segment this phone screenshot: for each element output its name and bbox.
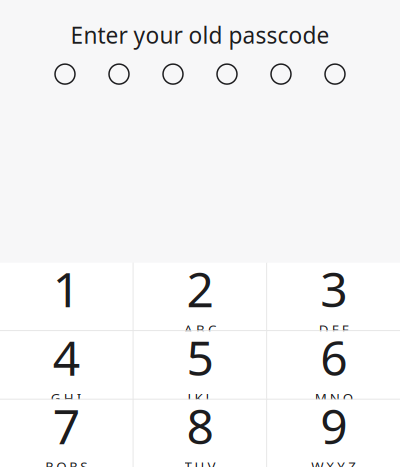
button[interactable]: 5 (134, 331, 266, 399)
staticText: T U V (184, 457, 215, 467)
button[interactable]: 7 (0, 400, 133, 467)
button[interactable]: 2 (134, 263, 266, 330)
staticText: Enter your old passcode (70, 20, 329, 50)
staticText: A B C (184, 320, 216, 338)
button[interactable]: 8 (134, 400, 266, 467)
staticText: W X Y Z (311, 457, 356, 467)
staticText: 2 (186, 257, 213, 320)
staticText: J K L (187, 389, 212, 407)
button[interactable]: 6 (267, 331, 400, 399)
staticText: 9 (320, 394, 347, 457)
staticText: 6 (320, 325, 347, 389)
staticText: 3 (320, 257, 347, 320)
button[interactable]: 4 (0, 331, 133, 399)
staticText: D E F (319, 320, 349, 338)
staticText: M N O (315, 389, 353, 407)
button[interactable]: 1 (0, 263, 133, 330)
staticText: P Q R S (45, 457, 87, 467)
staticText: 7 (53, 394, 80, 457)
staticText: 8 (186, 394, 213, 457)
staticText: 4 (53, 325, 80, 389)
staticText: 1 (53, 257, 80, 320)
staticText: 5 (186, 325, 213, 389)
staticText: G H I (51, 389, 82, 407)
button[interactable]: 3 (267, 263, 400, 330)
button[interactable]: 9 (267, 400, 400, 467)
